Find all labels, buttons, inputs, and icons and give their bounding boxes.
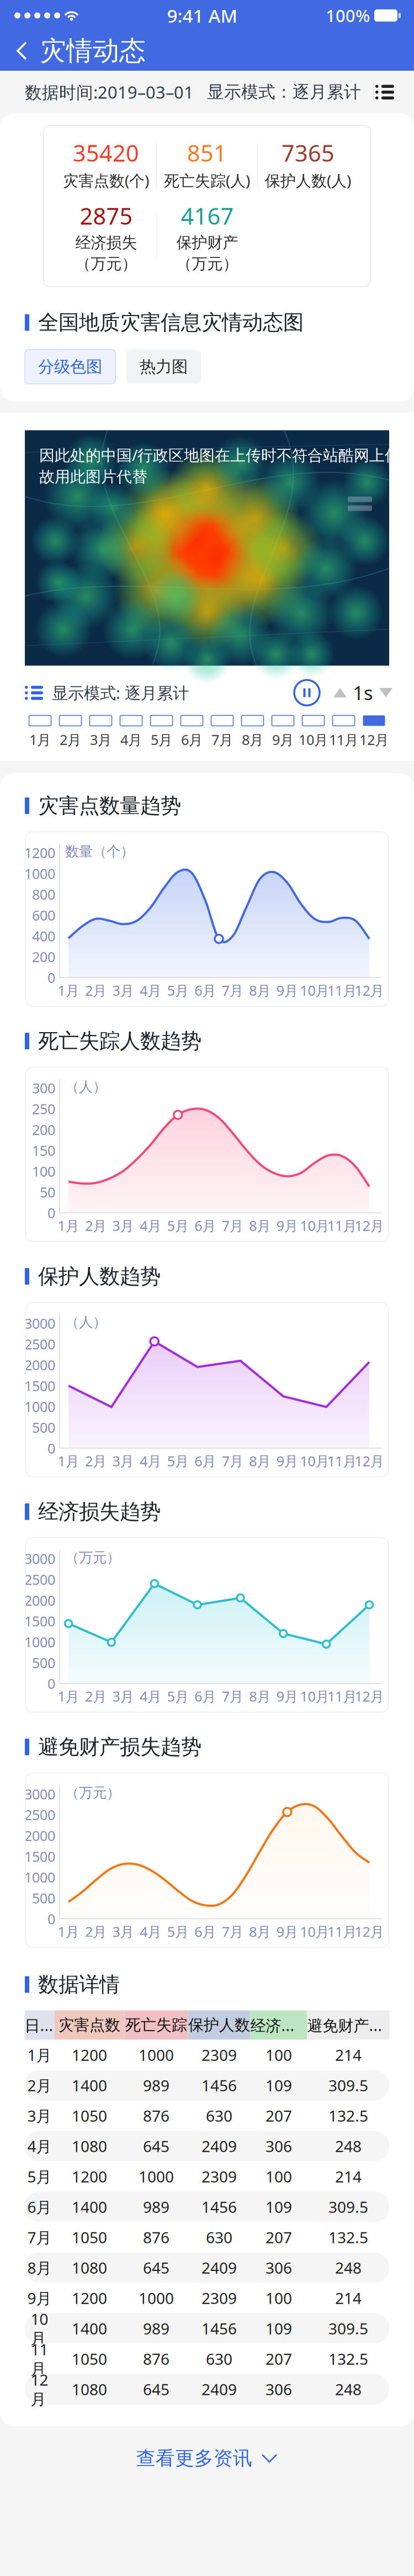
staticText: 12月: [355, 981, 384, 1000]
staticText: 8月: [249, 1216, 271, 1235]
staticText: 132.5: [328, 2105, 368, 2126]
staticText: 800: [32, 885, 55, 904]
staticText: 132.5: [328, 2227, 368, 2248]
staticText: 1200: [72, 2288, 107, 2308]
staticText: 1500: [24, 1847, 55, 1866]
staticText: 306: [266, 2136, 292, 2156]
staticText: 10月: [300, 1922, 329, 1941]
staticText: 9月: [276, 1216, 298, 1235]
staticText: 保护财产: [176, 233, 238, 252]
staticText: 630: [206, 2349, 232, 2369]
staticText: 989: [143, 2075, 169, 2096]
staticText: 109: [266, 2318, 292, 2339]
staticText: 经济损失趋势: [38, 1499, 161, 1524]
staticText: 4167: [181, 201, 234, 231]
staticText: 2000: [24, 1591, 55, 1609]
staticText: 248: [335, 2136, 362, 2156]
staticText: 4月: [27, 2136, 52, 2156]
staticText: 11月: [327, 1922, 357, 1941]
staticText: 248: [335, 2379, 362, 2399]
staticText: 5月: [27, 2166, 52, 2187]
staticText: 5月: [167, 1216, 189, 1235]
staticText: 500: [32, 1653, 55, 1672]
staticText: 1s: [353, 680, 373, 705]
staticText: 1456: [201, 2075, 237, 2096]
staticText: 1456: [201, 2318, 237, 2339]
staticText: 876: [143, 2349, 169, 2369]
staticText: 1400: [72, 2318, 107, 2339]
staticText: 5月: [167, 1452, 189, 1470]
staticText: 4月: [140, 1216, 161, 1235]
staticText: 150: [32, 1141, 55, 1160]
staticText: 9月: [272, 730, 294, 749]
staticText: 数据详情: [38, 1972, 120, 1997]
staticText: 1000: [139, 2045, 174, 2065]
staticText: 灾害点数(个): [63, 170, 149, 191]
staticText: 1月: [58, 1216, 79, 1235]
staticText: 7月: [211, 730, 233, 749]
staticText: 日期: [25, 2015, 54, 2035]
staticText: 3000: [24, 1549, 55, 1568]
staticText: 1500: [24, 1612, 55, 1630]
staticText: 1080: [72, 2136, 107, 2156]
staticText: 989: [143, 2318, 169, 2339]
staticText: 1月: [58, 1922, 79, 1941]
staticText: （万元）: [65, 1784, 120, 1801]
staticText: （万元）: [176, 254, 238, 273]
button[interactable]: 分级色图: [25, 350, 115, 384]
staticText: 死亡失踪: [125, 2016, 187, 2035]
staticText: 6月: [194, 981, 216, 1000]
staticText: 4月: [140, 981, 161, 1000]
staticText: 50: [40, 1183, 55, 1201]
staticText: 1050: [72, 2105, 107, 2126]
staticText: 500: [32, 1418, 55, 1437]
staticText: 保护人数趋势: [38, 1264, 161, 1289]
button[interactable]: 切换显示模式: [372, 82, 397, 102]
staticText: 1050: [72, 2227, 107, 2248]
button[interactable]: 灾情动态: [0, 28, 159, 74]
staticText: 214: [335, 2288, 362, 2308]
staticText: 1月: [58, 1687, 79, 1705]
staticText: 1000: [24, 1397, 55, 1416]
staticText: 645: [143, 2136, 169, 2156]
staticText: 6月: [27, 2197, 52, 2217]
staticText: 1050: [72, 2349, 107, 2369]
staticText: 0: [47, 968, 55, 987]
staticText: 3月: [112, 1452, 134, 1470]
staticText: 5月: [151, 730, 172, 749]
staticText: 2500: [24, 1570, 55, 1589]
staticText: （万元）: [65, 1549, 120, 1566]
staticText: 显示模式: 逐月累计: [52, 682, 189, 704]
staticText: 1月: [58, 981, 79, 1000]
staticText: 2409: [201, 2136, 237, 2156]
staticText: 3000: [24, 1785, 55, 1803]
staticText: 12月: [355, 1216, 384, 1235]
staticText: 214: [335, 2166, 362, 2187]
staticText: 1200: [72, 2166, 107, 2187]
staticText: 207: [266, 2349, 292, 2369]
staticText: 989: [143, 2197, 169, 2217]
button[interactable]: 热力图: [126, 350, 201, 384]
staticText: 5月: [167, 1687, 189, 1705]
staticText: 1月: [27, 2045, 52, 2065]
staticText: 2409: [201, 2257, 237, 2278]
staticText: 250: [32, 1100, 55, 1118]
button[interactable]: 暂停: [294, 680, 320, 705]
staticText: 3月: [112, 981, 134, 1000]
staticText: 200: [32, 947, 55, 966]
staticText: 645: [143, 2379, 169, 2399]
staticText: 3000: [24, 1314, 55, 1333]
staticText: 1080: [72, 2379, 107, 2399]
staticText: 6月: [194, 1216, 216, 1235]
staticText: 8月: [249, 1687, 271, 1705]
staticText: 109: [266, 2197, 292, 2217]
staticText: 7月: [222, 1687, 243, 1705]
staticText: 9月: [276, 1922, 298, 1941]
staticText: 0: [47, 1439, 55, 1457]
staticText: 12月: [355, 1687, 384, 1705]
staticText: 10月: [300, 1216, 329, 1235]
button[interactable]: 查看更多资讯: [125, 2435, 289, 2481]
staticText: 100%: [326, 4, 370, 27]
staticText: 2000: [24, 1356, 55, 1374]
staticText: 1月: [58, 1452, 79, 1470]
